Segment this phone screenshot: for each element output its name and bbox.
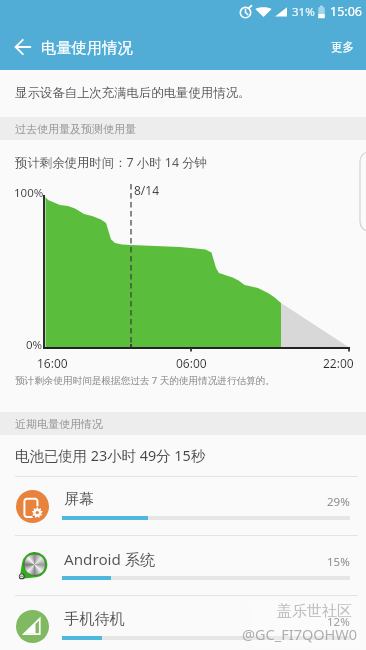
button[interactable]: Back (0, 24, 46, 70)
staticText: 8/14 (134, 182, 160, 198)
staticText: 手机待机 (64, 609, 125, 628)
staticText: 12% (327, 614, 350, 630)
button[interactable]: 更多 (317, 24, 366, 70)
staticText: 显示设备自上次充满电后的电量使用情况。 (15, 85, 251, 101)
staticText: Android 系统 (64, 549, 156, 570)
staticText: 过去使用量及预测使用量 (15, 122, 136, 136)
staticText: 电量使用情况 (41, 38, 133, 57)
staticText: 15% (327, 554, 350, 570)
staticText: @GC_FI7QOHW0 (242, 624, 358, 644)
staticText: 22:00 (323, 355, 354, 371)
staticText: 31% (292, 4, 315, 20)
staticText: 0% (26, 337, 43, 353)
staticText: 盖乐世社区 (277, 602, 352, 621)
staticText: 近期电量使用情况 (15, 417, 103, 431)
staticText: 06:00 (176, 355, 207, 371)
staticText: 更多 (331, 40, 355, 55)
staticText: 预计剩余使用时间：7 小时 14 分钟 (15, 154, 208, 171)
staticText: 29% (327, 494, 350, 510)
staticText: 15:06 (330, 3, 362, 20)
staticText: 100% (14, 185, 44, 201)
staticText: 预计剩余使用时间是根据您过去 7 天的使用情况进行估算的。 (15, 374, 275, 387)
staticText: 16:00 (37, 355, 68, 371)
staticText: 屏幕 (64, 489, 95, 508)
button[interactable]: 屏幕 (0, 476, 366, 536)
button[interactable]: 手机待机 (0, 596, 366, 650)
staticText: 电池已使用 23小时 49分 15秒 (15, 446, 206, 466)
button[interactable]: Android 系统 (0, 536, 366, 596)
